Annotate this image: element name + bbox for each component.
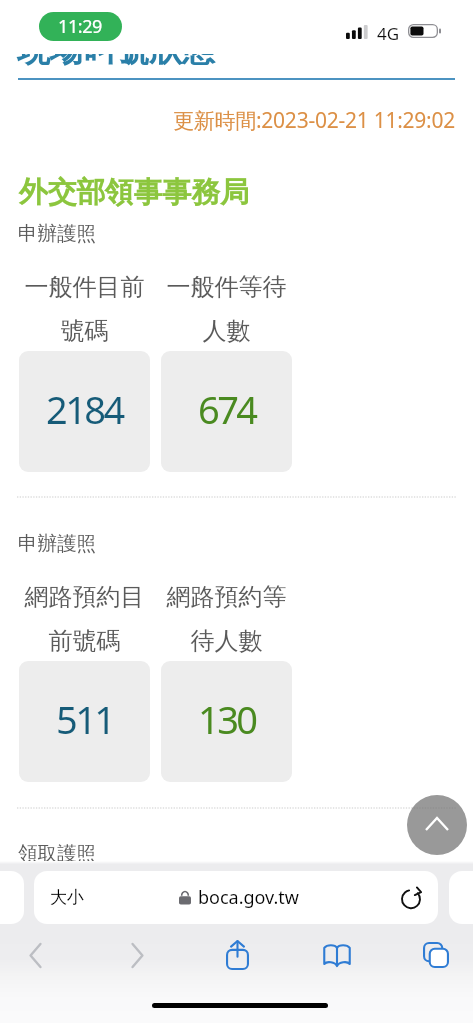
button[interactable]: Back: [11, 931, 59, 979]
button[interactable]: 大小: [34, 871, 438, 924]
staticText: 一般件目前號碼: [19, 272, 150, 346]
button[interactable]: 130: [161, 661, 292, 782]
staticText: 大小: [50, 887, 84, 908]
staticText: 2184: [46, 383, 123, 435]
staticText: 130: [198, 693, 256, 745]
button[interactable]: Scroll to top: [407, 795, 467, 855]
staticText: 網路預約目前號碼: [19, 582, 150, 656]
button[interactable]: Tabs: [412, 931, 460, 979]
button[interactable]: Bookmarks: [313, 931, 361, 979]
button[interactable]: 2184: [19, 351, 150, 472]
staticText: 更新時間:2023-02-21 11:29:02: [0, 106, 455, 135]
staticText: 申辦護照: [18, 221, 96, 246]
button[interactable]: Share: [213, 931, 261, 979]
staticText: 11:29: [58, 14, 103, 39]
staticText: 4G: [377, 22, 400, 45]
button[interactable]: Reload: [396, 883, 426, 913]
staticText: 領取護照: [18, 841, 96, 866]
staticText: boca.gov.tw: [198, 885, 300, 910]
staticText: 一般件等待人數: [161, 272, 292, 346]
button[interactable]: Forward: [113, 931, 161, 979]
staticText: 網路預約等待人數: [161, 582, 292, 656]
staticText: 現場叫號狀態: [17, 54, 215, 66]
staticText: 511: [56, 693, 114, 745]
staticText: 674: [198, 383, 256, 435]
button[interactable]: 511: [19, 661, 150, 782]
staticText: 外交部領事事務局: [19, 174, 249, 211]
button[interactable]: 674: [161, 351, 292, 472]
staticText: 申辦護照: [18, 531, 96, 556]
